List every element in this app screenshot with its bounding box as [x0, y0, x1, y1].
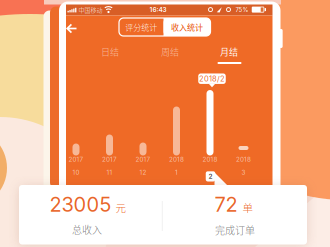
- staticText: 完成订单: [215, 223, 255, 237]
- staticText: 收入统计: [171, 21, 203, 33]
- staticText: 75%: [235, 6, 248, 13]
- staticText: 12: [139, 169, 146, 176]
- button[interactable]: 收入统计: [163, 18, 210, 36]
- staticText: 月结: [220, 45, 238, 58]
- staticText: 2018: [169, 156, 184, 163]
- button[interactable]: 评分统计: [119, 18, 163, 36]
- staticText: 评分统计: [125, 21, 157, 33]
- staticText: 2017: [135, 156, 150, 163]
- button[interactable]: 月结: [207, 43, 251, 59]
- staticText: 2018/2: [199, 74, 225, 83]
- staticText: 2018: [236, 156, 251, 163]
- staticText: 1: [175, 169, 178, 176]
- staticText: 单: [242, 200, 253, 215]
- staticText: 日结: [101, 45, 119, 58]
- button[interactable]: Back: [66, 23, 77, 33]
- staticText: 2017: [68, 156, 83, 163]
- staticText: 2018: [202, 156, 217, 163]
- staticText: 总收入: [72, 222, 102, 237]
- staticText: 72: [214, 192, 237, 217]
- staticText: 10: [72, 169, 79, 176]
- staticText: 中国移动: [78, 5, 102, 14]
- staticText: 元: [115, 200, 126, 215]
- staticText: 16:43: [149, 6, 166, 14]
- button[interactable]: 2018/2: [206, 171, 215, 181]
- staticText: 11: [106, 169, 112, 176]
- button[interactable]: 日结: [88, 43, 132, 59]
- staticText: 2: [208, 172, 212, 180]
- button[interactable]: 周结: [148, 43, 192, 59]
- staticText: 周结: [161, 45, 179, 58]
- staticText: 3: [241, 169, 245, 176]
- staticText: 23005: [49, 192, 111, 217]
- staticText: 2017: [102, 156, 117, 163]
